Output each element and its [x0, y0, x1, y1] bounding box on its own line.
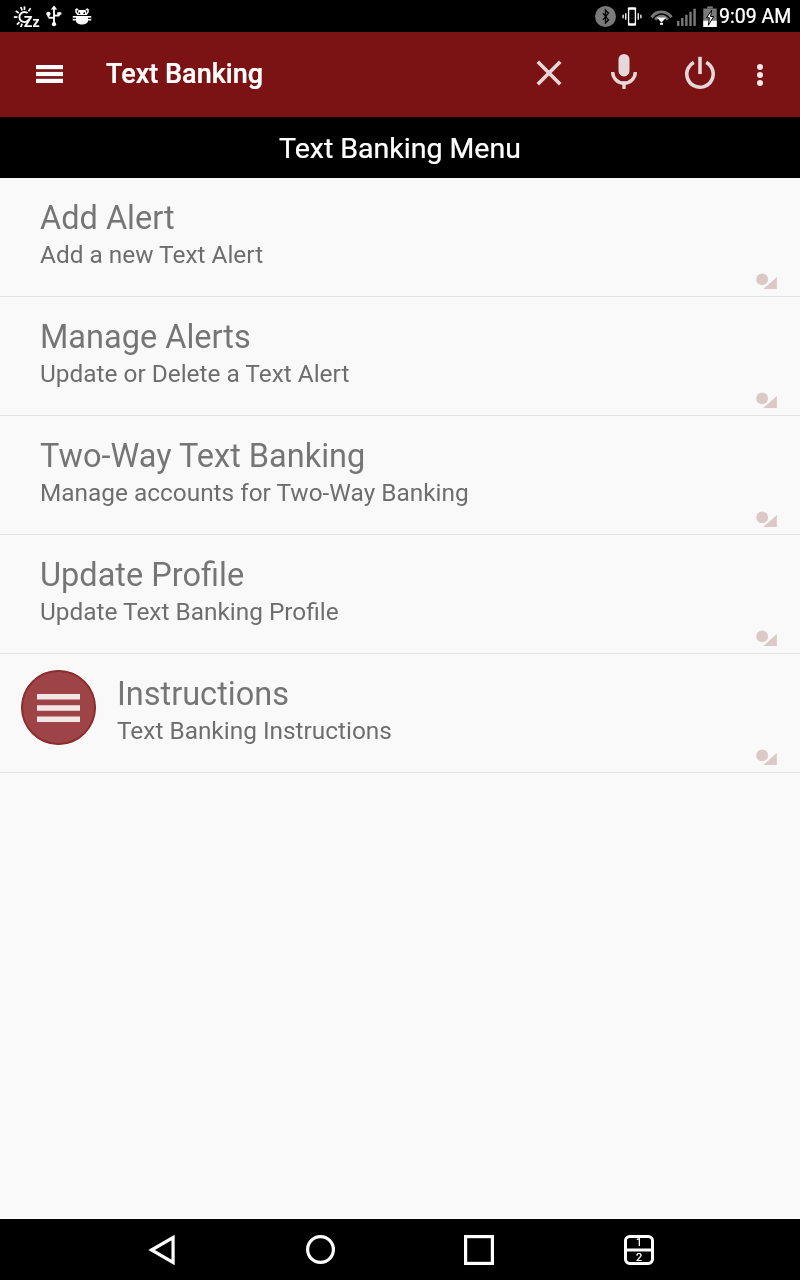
button[interactable]: Recent apps — [448, 1219, 510, 1280]
button[interactable]: Back — [131, 1219, 193, 1280]
button[interactable]: Log out — [672, 44, 728, 100]
button[interactable]: Split screen — [608, 1219, 670, 1280]
staticText: Update Text Banking Profile — [40, 597, 339, 626]
staticText: 2 — [636, 1251, 643, 1264]
button[interactable]: Two-Way Text Banking — [0, 416, 800, 534]
button[interactable]: Add Alert — [0, 178, 800, 296]
staticText: Two-Way Text Banking — [40, 437, 366, 475]
staticText: Text Banking Instructions — [117, 716, 392, 745]
staticText: 1 — [636, 1236, 643, 1249]
staticText: Update or Delete a Text Alert — [40, 359, 350, 388]
staticText: Instructions — [117, 675, 289, 713]
staticText: Manage accounts for Two-Way Banking — [40, 478, 469, 507]
button[interactable]: Open navigation drawer — [21, 46, 77, 102]
staticText: Update Profile — [40, 556, 245, 594]
staticText: Add Alert — [40, 199, 175, 237]
button[interactable]: Instructions — [0, 654, 800, 772]
staticText: Text Banking — [106, 58, 264, 90]
button[interactable]: Manage Alerts — [0, 297, 800, 415]
button[interactable]: More options — [734, 49, 786, 101]
staticText: Zz — [24, 14, 40, 30]
staticText: 9:09 AM — [719, 5, 792, 28]
button[interactable]: Home — [289, 1219, 351, 1280]
button[interactable]: Close — [521, 45, 577, 101]
staticText: Add a new Text Alert — [40, 240, 264, 269]
staticText: Text Banking Menu — [279, 132, 521, 165]
button[interactable]: Voice input — [596, 46, 652, 102]
button[interactable]: Update Profile — [0, 535, 800, 653]
staticText: Manage Alerts — [40, 318, 251, 356]
